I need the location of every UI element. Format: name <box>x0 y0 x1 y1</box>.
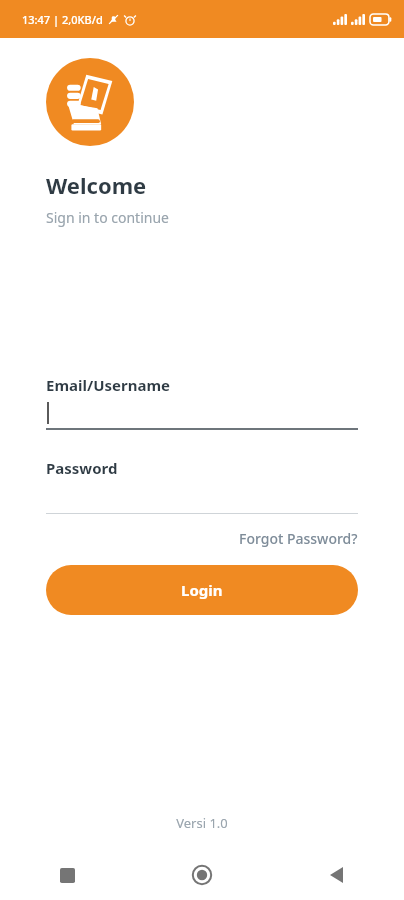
button[interactable] <box>46 395 358 430</box>
staticText: 13:47 | 2,0KB/d <box>22 12 103 27</box>
staticText: Versi 1.0 <box>46 814 358 832</box>
button[interactable]: Home <box>134 850 269 900</box>
staticText: Email/Username <box>46 375 171 395</box>
button[interactable]: Back <box>269 850 404 900</box>
staticText: Password <box>46 458 118 478</box>
button[interactable] <box>46 478 358 514</box>
button[interactable]: Recent apps <box>0 850 134 900</box>
staticText: Welcome <box>46 170 147 200</box>
staticText: Login <box>181 580 223 600</box>
staticText: Sign in to continue <box>46 208 169 227</box>
button[interactable]: Forgot Password? <box>239 526 358 551</box>
staticText: Forgot Password? <box>239 529 358 548</box>
button[interactable]: Login <box>46 565 358 615</box>
